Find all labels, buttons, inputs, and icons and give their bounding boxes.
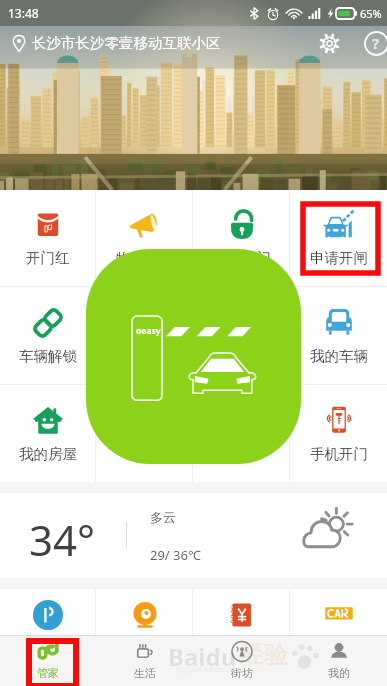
staticText: 34° bbox=[29, 511, 96, 568]
button[interactable]: Discount bbox=[96, 589, 193, 634]
button[interactable]: 街坊 bbox=[193, 636, 290, 686]
button[interactable]: 手机开门 bbox=[290, 385, 387, 482]
button[interactable]: Open gate guide bbox=[86, 249, 301, 464]
staticText: 物业缴费 bbox=[116, 249, 174, 267]
staticText: 生活 bbox=[134, 666, 156, 680]
button[interactable]: 生活 bbox=[96, 636, 193, 686]
button[interactable]: Car bbox=[290, 589, 387, 634]
button[interactable]: Parking bbox=[0, 589, 96, 634]
staticText: 经验 bbox=[240, 640, 288, 670]
staticText: 13:48 bbox=[8, 5, 39, 21]
staticText: 管家 bbox=[37, 666, 59, 680]
staticText: 车辆解锁 bbox=[19, 347, 77, 365]
button[interactable]: 长沙市长沙零壹移动互联小区 bbox=[12, 34, 221, 52]
button[interactable]: Settings bbox=[315, 29, 343, 57]
button[interactable]: 申请开闸 bbox=[290, 190, 387, 286]
staticText: Baidu bbox=[168, 640, 237, 673]
staticText: 我的房屋 bbox=[19, 445, 77, 463]
button[interactable]: 我的房屋 bbox=[0, 385, 96, 482]
staticText: 开门红 bbox=[26, 249, 70, 267]
staticText: 街坊 bbox=[231, 666, 253, 680]
button[interactable]: 我的车辆 bbox=[290, 287, 387, 384]
button[interactable]: 开门红 bbox=[0, 190, 96, 286]
staticText: 访客开门 bbox=[213, 249, 271, 267]
staticText: oeasy bbox=[136, 325, 161, 337]
button[interactable]: 34° bbox=[0, 493, 387, 578]
staticText: 手机开门 bbox=[310, 445, 368, 463]
button[interactable]: 物业缴费 bbox=[96, 190, 193, 286]
staticText: 我的 bbox=[328, 666, 350, 680]
staticText: 29/ 36℃ bbox=[150, 546, 201, 564]
staticText: 我的车辆 bbox=[310, 347, 368, 365]
button[interactable]: 我的 bbox=[290, 636, 387, 686]
staticText: 申请开闸 bbox=[310, 249, 368, 267]
staticText: 多云 bbox=[150, 509, 176, 525]
button[interactable]: 访客开门 bbox=[193, 190, 290, 286]
button[interactable]: 管家 bbox=[0, 636, 96, 686]
staticText: 长沙市长沙零壹移动互联小区 bbox=[32, 34, 221, 52]
button[interactable]: Help bbox=[361, 28, 387, 58]
staticText: 65% bbox=[360, 6, 382, 21]
button[interactable]: Coupon bbox=[193, 589, 290, 634]
staticText: Jingyan.baidu.com bbox=[176, 664, 242, 674]
button[interactable]: 车辆解锁 bbox=[0, 287, 96, 384]
staticText: ? bbox=[372, 33, 380, 53]
